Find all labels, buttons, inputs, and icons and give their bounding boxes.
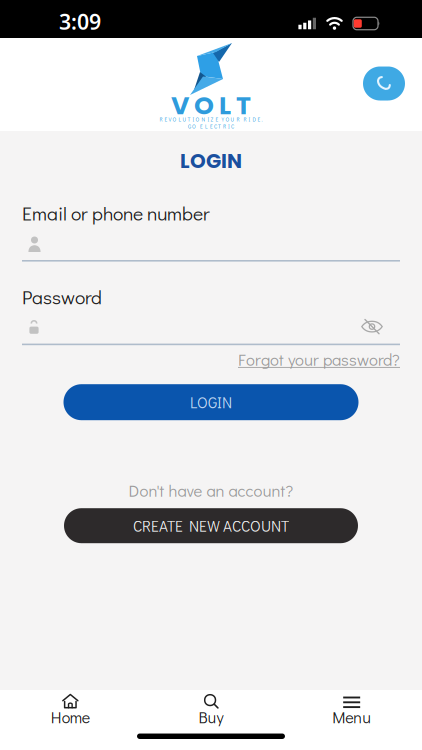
- button[interactable]: Call support: [363, 66, 405, 100]
- staticText: V O L T: [171, 88, 251, 123]
- button[interactable]: Forgot your password?: [238, 350, 400, 368]
- button[interactable]: Buy: [141, 693, 281, 724]
- staticText: R E V O L U T I O N I Z E Y O U R R I D …: [159, 116, 262, 123]
- staticText: G O E L E C T R I C: [188, 123, 234, 130]
- staticText: Buy: [198, 706, 223, 727]
- staticText: LOGIN: [190, 392, 232, 412]
- button[interactable]: LOGIN: [63, 384, 358, 420]
- button[interactable]: Home: [0, 693, 141, 724]
- staticText: Menu: [332, 706, 371, 727]
- button[interactable]: Menu: [281, 693, 422, 724]
- button[interactable]: CREATE NEW ACCOUNT: [64, 508, 358, 543]
- button[interactable]: Show password: [361, 318, 400, 335]
- staticText: CREATE NEW ACCOUNT: [133, 516, 289, 536]
- staticText: Email or phone number: [22, 200, 210, 226]
- staticText: 3:09: [59, 7, 101, 36]
- staticText: Password: [22, 284, 102, 309]
- staticText: Don't have an account?: [128, 479, 293, 501]
- staticText: LOGIN: [180, 147, 242, 175]
- staticText: Home: [51, 706, 90, 727]
- staticText: Forgot your password?: [238, 348, 400, 370]
